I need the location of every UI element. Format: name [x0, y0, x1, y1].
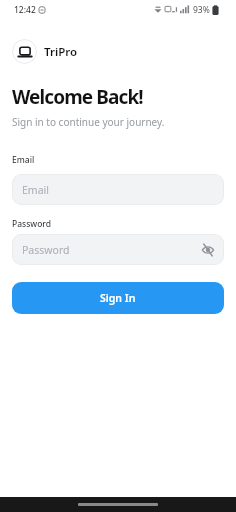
- button[interactable]: TriPro: [12, 39, 78, 64]
- button[interactable]: Sign In: [12, 282, 224, 314]
- staticText: Sign In: [100, 291, 136, 305]
- staticText: Email: [12, 154, 35, 166]
- staticText: Password: [22, 243, 70, 257]
- staticText: Welcome Back!: [12, 84, 143, 110]
- button[interactable]: Password: [12, 234, 224, 265]
- staticText: 93%: [193, 4, 210, 16]
- staticText: Password: [12, 218, 52, 230]
- staticText: 12:42: [14, 4, 36, 16]
- staticText: Email: [22, 183, 49, 197]
- staticText: Sign in to continue your journey.: [12, 115, 165, 129]
- button[interactable]: Email: [12, 174, 224, 205]
- staticText: TriPro: [44, 44, 78, 60]
- button[interactable]: [201, 243, 215, 257]
